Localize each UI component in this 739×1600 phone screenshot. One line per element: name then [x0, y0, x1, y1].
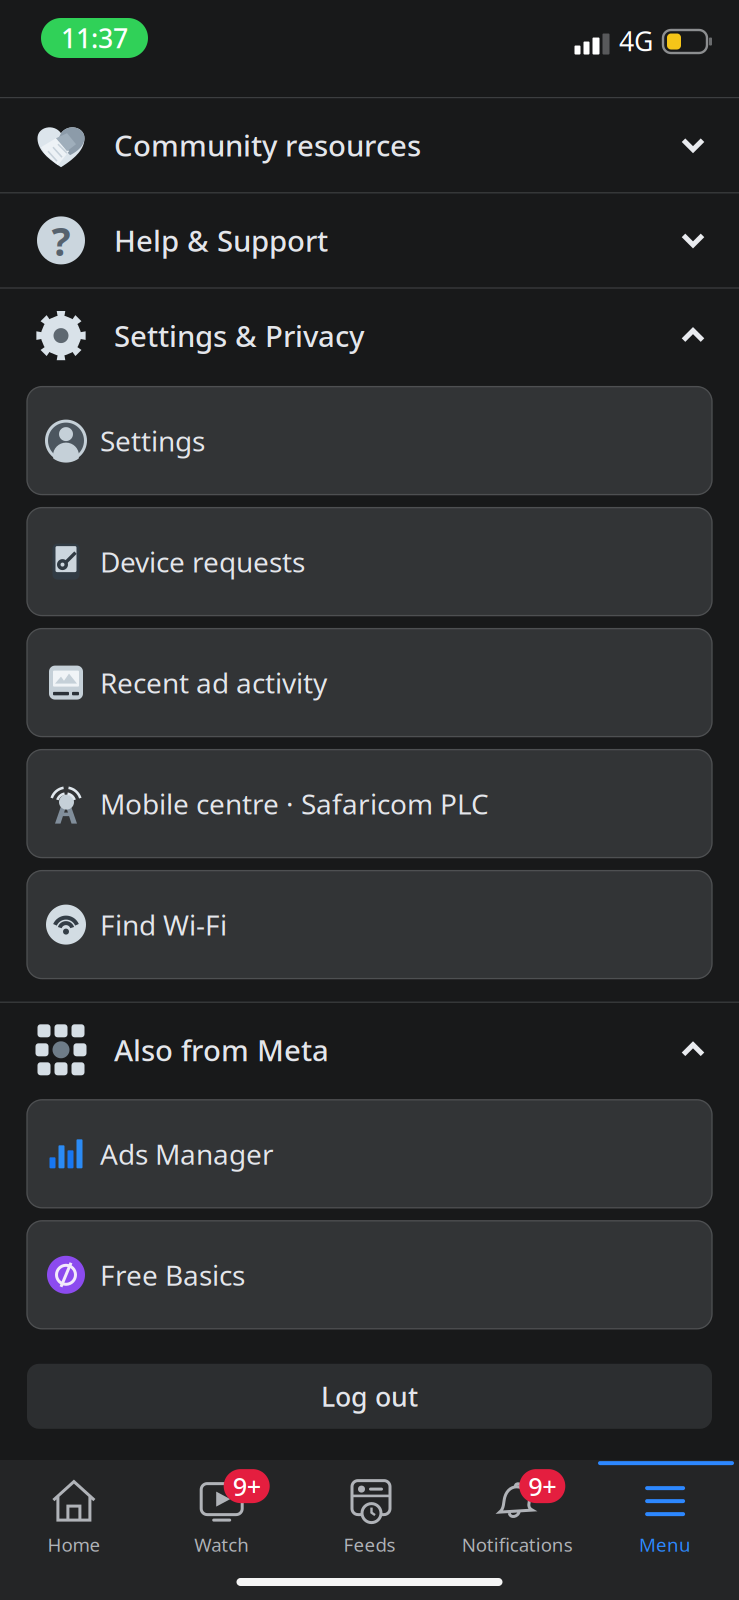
button[interactable]: Also from Meta	[0, 1003, 739, 1097]
button[interactable]: Ads Manager	[0, 1100, 739, 1208]
button[interactable]: Feeds	[296, 1461, 443, 1563]
staticText: 9+	[233, 1469, 261, 1503]
button[interactable]: Settings & Privacy	[0, 289, 739, 383]
button[interactable]: Find Wi-Fi	[0, 871, 739, 979]
button[interactable]: Home	[0, 1461, 148, 1563]
button[interactable]: 9+	[443, 1461, 591, 1563]
button[interactable]: Free Basics	[0, 1221, 739, 1329]
button[interactable]: Community resources	[0, 98, 739, 192]
staticText: Home	[47, 1532, 100, 1557]
staticText: Notifications	[462, 1532, 573, 1557]
staticText: Watch	[194, 1532, 249, 1557]
staticText: ?	[51, 214, 70, 267]
staticText: 11:37	[61, 20, 128, 56]
staticText: Also from Meta	[114, 1030, 329, 1069]
button[interactable]: Settings	[0, 387, 739, 495]
staticText: Mobile centre · Safaricom PLC	[100, 785, 489, 822]
staticText: Help & Support	[114, 221, 328, 260]
staticText: Community resources	[114, 126, 421, 165]
staticText: Log out	[321, 1379, 418, 1414]
staticText: 9+	[528, 1469, 556, 1503]
button[interactable]: Device requests	[0, 508, 739, 616]
staticText: Settings & Privacy	[114, 316, 364, 355]
button[interactable]: 9+	[148, 1461, 296, 1563]
staticText: Recent ad activity	[100, 664, 327, 701]
button[interactable]: ?	[0, 193, 739, 287]
button[interactable]: Menu	[591, 1461, 739, 1563]
staticText: Menu	[639, 1532, 691, 1557]
staticText: Device requests	[100, 543, 305, 580]
staticText: Free Basics	[100, 1256, 245, 1293]
staticText: Settings	[100, 422, 205, 459]
button[interactable]: Log out	[0, 1364, 739, 1429]
staticText: 4G	[619, 23, 653, 59]
staticText: Feeds	[343, 1532, 395, 1557]
staticText: Ads Manager	[100, 1135, 274, 1172]
staticText: Find Wi-Fi	[100, 906, 227, 943]
button[interactable]: Recent ad activity	[0, 629, 739, 737]
button[interactable]: Mobile centre · Safaricom PLC	[0, 750, 739, 858]
